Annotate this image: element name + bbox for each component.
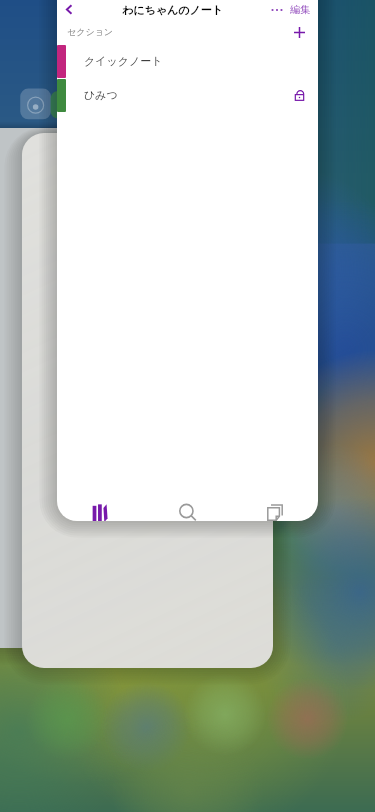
button[interactable]: Microsoft xyxy=(22,133,273,668)
staticText: ひみつ xyxy=(84,88,286,102)
staticText: クイックノート xyxy=(84,54,318,68)
button[interactable]: Back xyxy=(57,0,81,19)
button[interactable]: 検索 xyxy=(144,497,231,521)
staticText: セクション xyxy=(67,26,288,37)
button[interactable]: 編集 xyxy=(290,0,318,19)
staticText: 編集 xyxy=(290,3,310,16)
button[interactable]: 付箋 xyxy=(231,497,318,521)
button[interactable]: クイックノート xyxy=(57,44,318,78)
button[interactable]: ひみつ xyxy=(57,78,318,112)
button[interactable]: Back xyxy=(57,0,318,521)
button[interactable]: Add section xyxy=(288,21,310,43)
button[interactable] xyxy=(0,128,236,648)
button[interactable]: Unlock section xyxy=(286,82,312,108)
staticText: わにちゃんのノート xyxy=(81,3,264,17)
button[interactable]: ノートブック xyxy=(57,498,144,521)
button[interactable]: More options xyxy=(264,0,290,19)
